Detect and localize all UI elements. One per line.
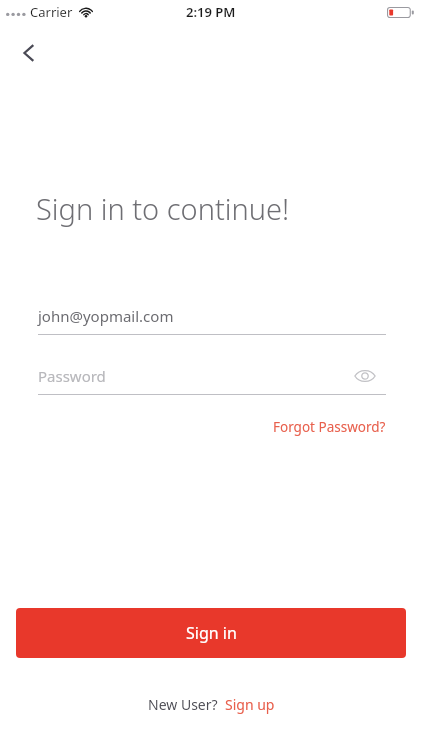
button[interactable]: Sign in	[16, 608, 406, 658]
staticText: Sign up	[225, 695, 275, 714]
button[interactable]: Password	[38, 358, 386, 394]
staticText: 2:19 PM	[186, 3, 236, 21]
button[interactable]: Sign up	[225, 695, 275, 714]
button[interactable]: Show password	[346, 357, 384, 395]
staticText: john@yopmail.com	[38, 306, 174, 326]
staticText: Password	[38, 366, 106, 386]
staticText: Sign in to continue!	[36, 189, 290, 228]
button[interactable]: Back	[8, 32, 50, 74]
button[interactable]: Forgot Password?	[240, 413, 386, 441]
staticText: Carrier	[30, 3, 73, 21]
staticText: Sign in	[186, 622, 237, 644]
button[interactable]: john@yopmail.com	[38, 298, 386, 334]
staticText: Forgot Password?	[273, 418, 386, 436]
staticText: New User?	[148, 695, 218, 714]
